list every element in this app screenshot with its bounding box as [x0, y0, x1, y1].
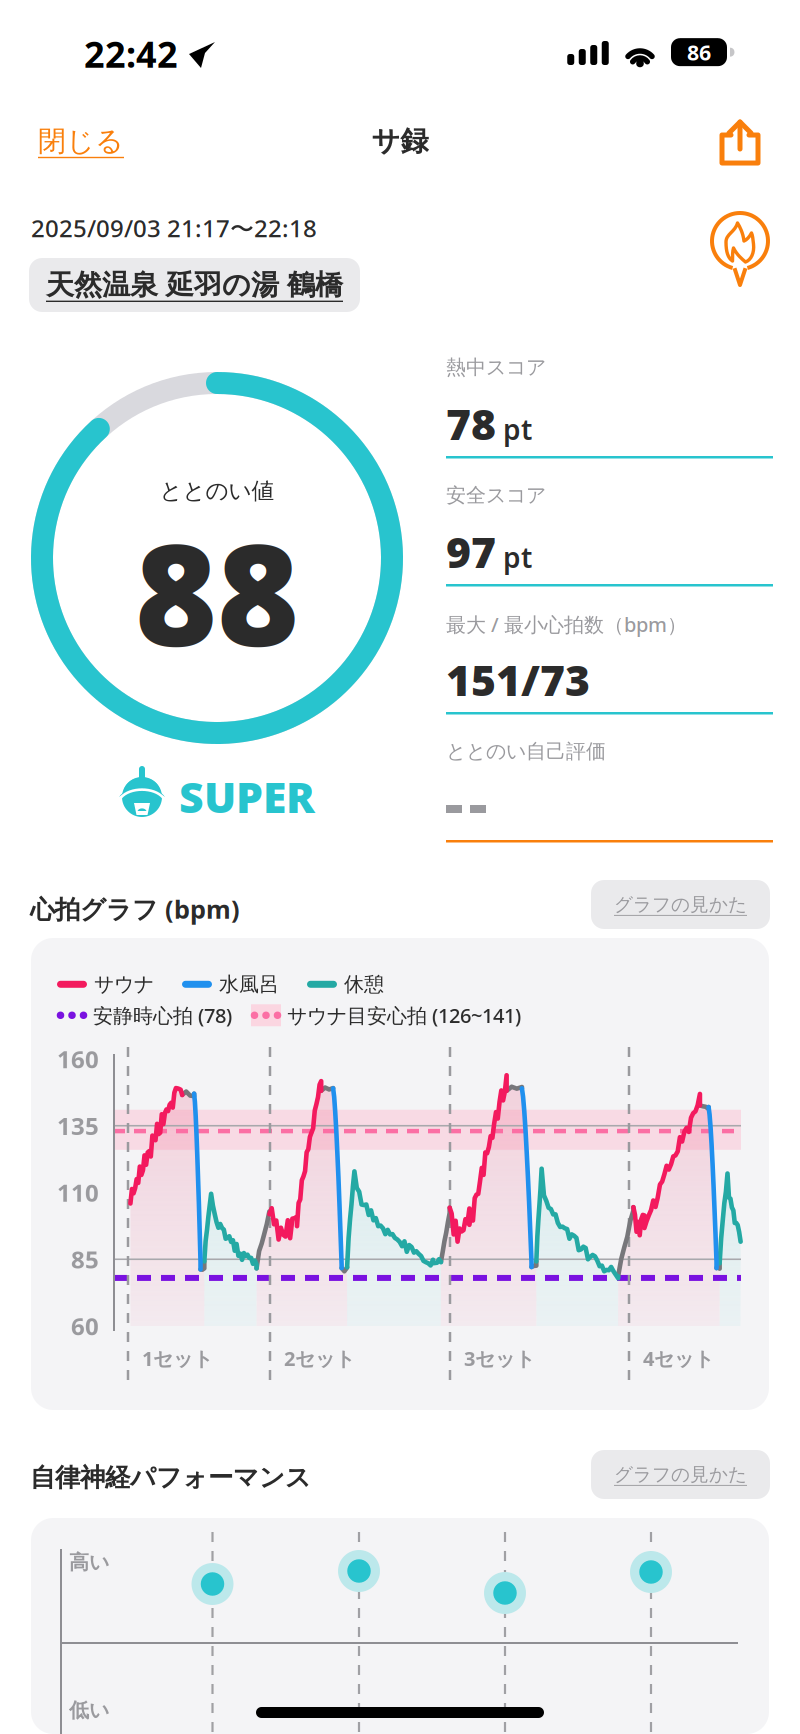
staticText: 2025/09/03 21:17〜22:18: [31, 212, 317, 244]
button[interactable]: 天然温泉 延羽の湯 鶴橋: [29, 258, 360, 312]
staticText: サウナ目安心拍 (126~141): [287, 1002, 521, 1029]
staticText: グラフの見かた: [614, 893, 747, 916]
staticText: サ録: [371, 124, 428, 158]
button[interactable]: 共有: [719, 119, 761, 166]
staticText: 4セット: [643, 1345, 714, 1372]
staticText: 閉じる: [38, 124, 124, 158]
button[interactable]: 閉じる: [38, 124, 124, 158]
staticText: SUPER: [179, 768, 315, 825]
staticText: 135: [57, 1110, 99, 1142]
staticText: 85: [71, 1243, 99, 1275]
staticText: 86: [687, 38, 711, 66]
staticText: グラフの見かた: [614, 1463, 747, 1486]
staticText: 22:42: [84, 30, 178, 78]
staticText: 天然温泉 延羽の湯 鶴橋: [46, 268, 343, 302]
staticText: 休憩: [344, 972, 384, 997]
staticText: 60: [71, 1310, 99, 1342]
staticText: サウナ: [94, 972, 154, 997]
staticText: 1セット: [142, 1345, 213, 1372]
staticText: 熱中スコア: [446, 355, 546, 380]
staticText: 88: [135, 499, 299, 685]
staticText: 自律神経パフォーマンス: [30, 1462, 311, 1493]
staticText: 低い: [69, 1698, 109, 1723]
staticText: 安全スコア: [446, 483, 546, 508]
staticText: 3セット: [464, 1345, 535, 1372]
staticText: ととのい値: [159, 477, 274, 505]
button[interactable]: サウナ強度: [710, 210, 770, 288]
staticText: ととのい自己評価: [446, 739, 606, 764]
staticText: 151/73: [446, 651, 590, 708]
staticText: 160: [57, 1043, 99, 1075]
staticText: pt: [503, 410, 532, 448]
staticText: 2セット: [284, 1345, 355, 1372]
staticText: 最大 / 最小心拍数（bpm）: [446, 611, 687, 638]
staticText: 110: [57, 1177, 99, 1208]
button[interactable]: グラフの見かた: [591, 880, 770, 929]
button[interactable]: グラフの見かた: [591, 1450, 770, 1499]
staticText: 安静時心拍 (78): [93, 1002, 232, 1029]
staticText: 水風呂: [219, 972, 279, 997]
staticText: 高い: [69, 1550, 109, 1575]
staticText: 78: [446, 395, 496, 452]
staticText: 心拍グラフ (bpm): [30, 892, 240, 926]
staticText: 97: [446, 523, 496, 580]
staticText: pt: [503, 538, 532, 576]
